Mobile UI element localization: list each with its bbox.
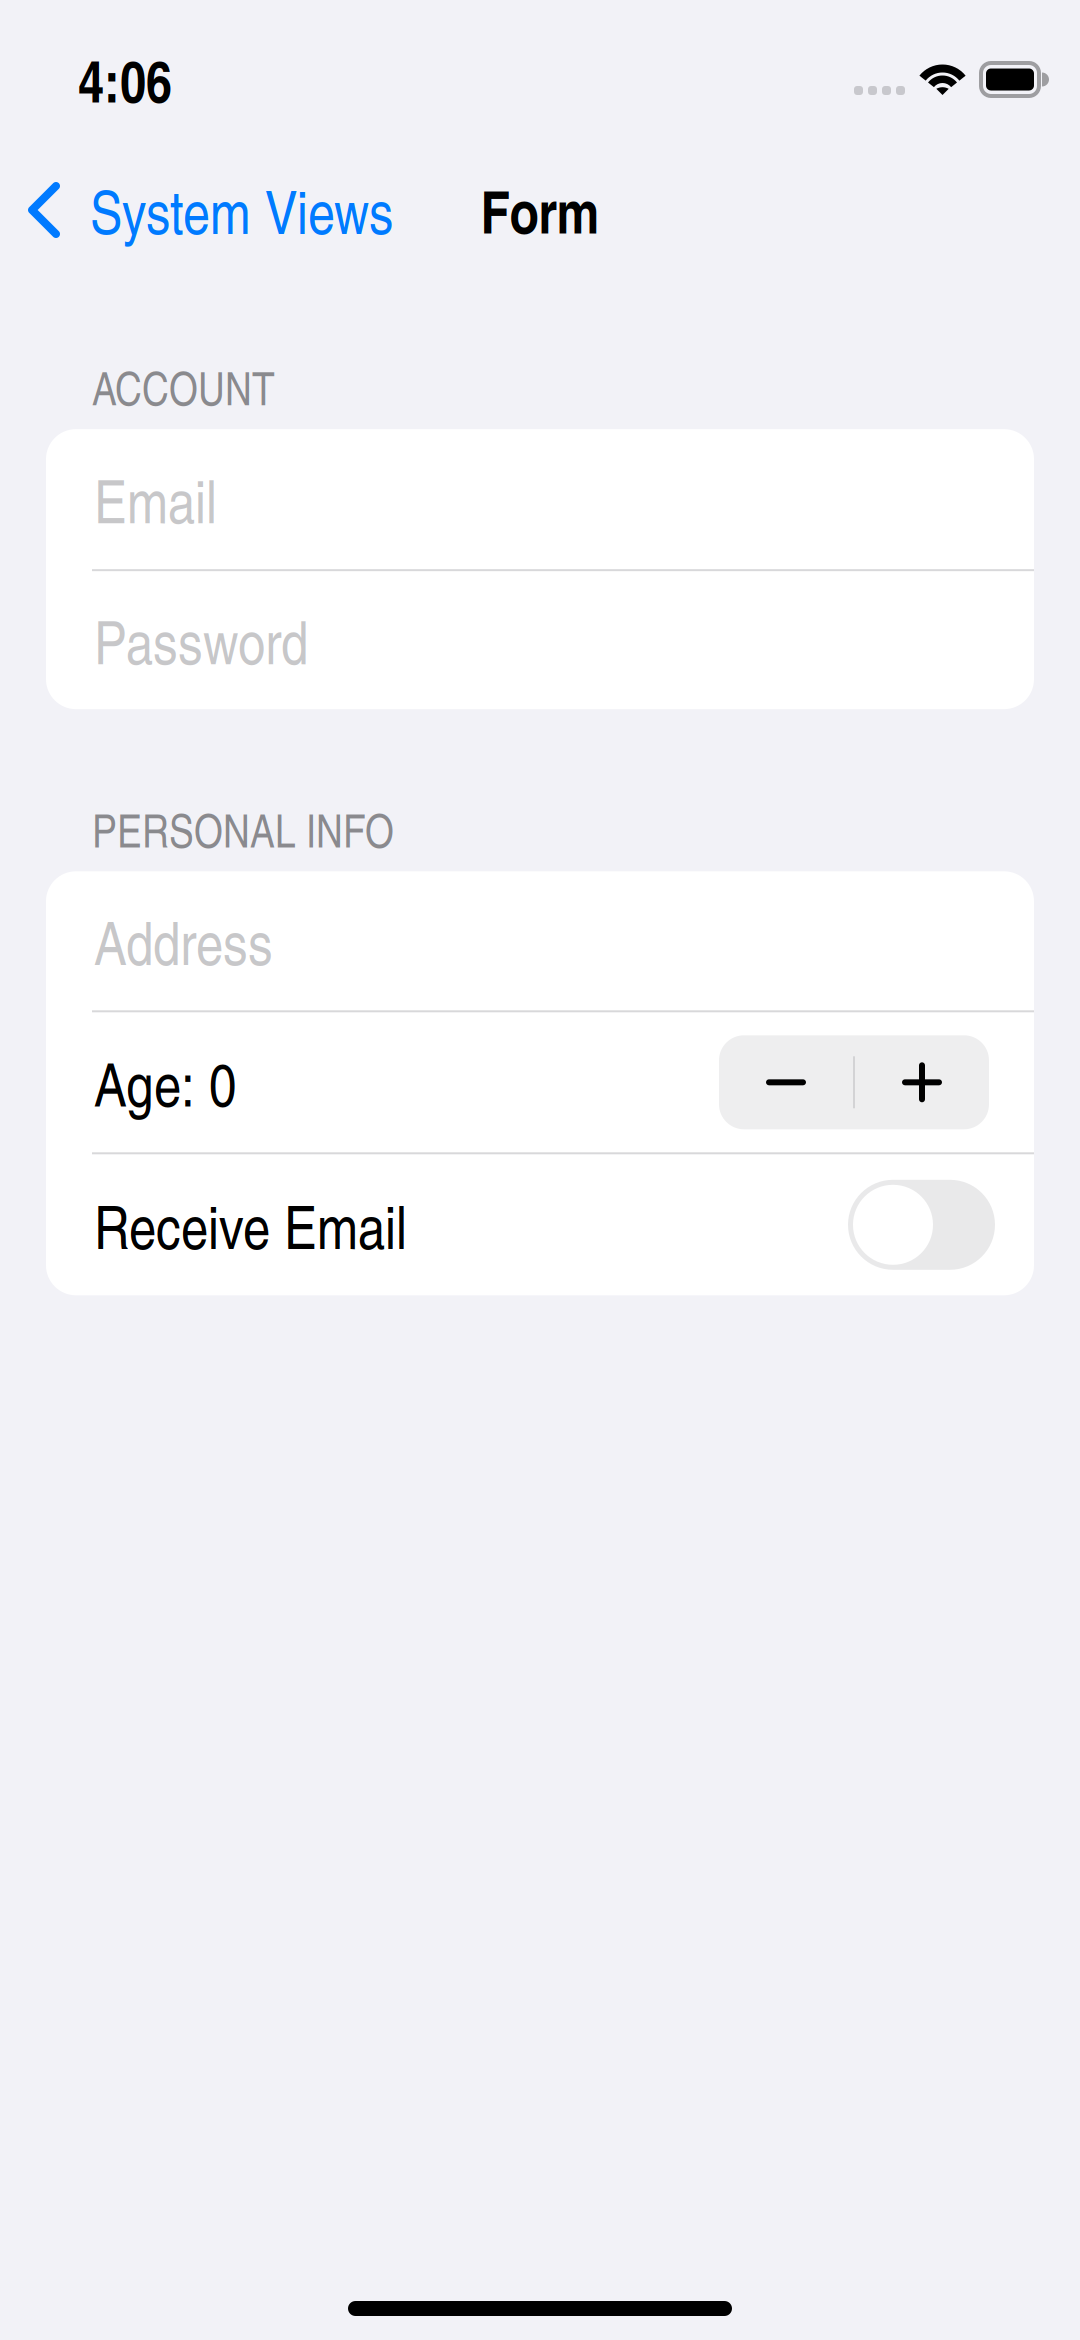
staticText: Form <box>480 169 599 251</box>
staticText: ACCOUNT <box>92 356 275 418</box>
button[interactable]: Password <box>46 571 1034 709</box>
staticText: System Views <box>90 169 393 251</box>
staticText: Receive Email <box>94 1184 407 1266</box>
staticText: Age: 0 <box>94 1041 236 1123</box>
button[interactable]: Back to System Views <box>0 157 411 263</box>
button[interactable]: Email <box>46 429 1034 569</box>
staticText: Password <box>94 599 308 681</box>
staticText: Email <box>94 458 217 540</box>
button[interactable]: Decrease age <box>719 1035 853 1129</box>
staticText: 4:06 <box>78 39 172 120</box>
staticText: Address <box>94 900 273 982</box>
button[interactable]: Receive Email, off <box>848 1180 995 1270</box>
button[interactable]: Address <box>46 871 1034 1010</box>
staticText: PERSONAL INFO <box>92 798 394 860</box>
button[interactable]: Increase age <box>855 1035 989 1129</box>
